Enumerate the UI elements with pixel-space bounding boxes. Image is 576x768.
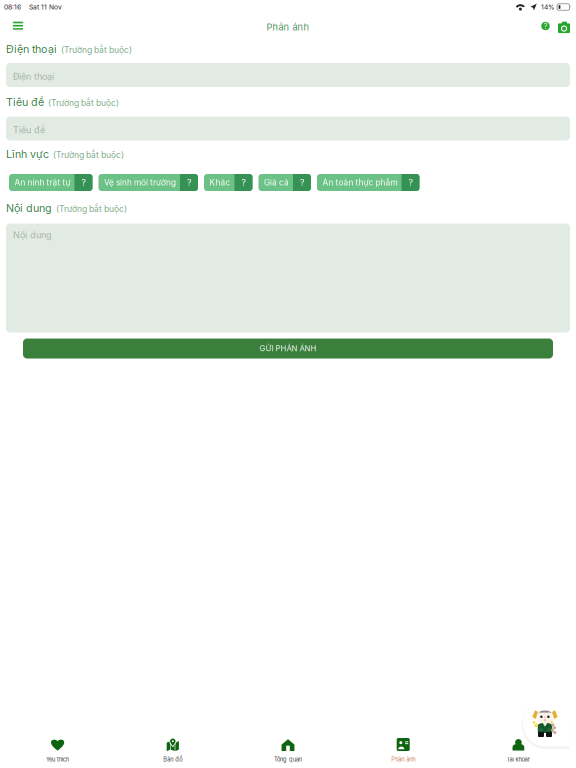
button[interactable]: Khác [204,174,252,191]
staticText: Khác [209,177,230,187]
button[interactable]: An toàn thực phẩm [317,174,419,191]
staticText: Điện thoại [6,42,57,55]
staticText: Tài khoản [506,756,530,763]
staticText: Vệ sinh môi trường [104,177,176,187]
staticText: Nội dung [13,229,52,240]
staticText: ? [241,177,245,188]
staticText: (Trường bắt buộc) [61,45,132,55]
button[interactable]: Tài khoản [461,729,576,768]
staticText: Phản ánh [391,756,415,763]
staticText: 08:16 [4,3,21,11]
staticText: Yêu thích [46,756,69,763]
staticText: Lĩnh vực [6,147,49,160]
button[interactable]: Phản ánh [346,729,461,768]
staticText: Bản đồ [163,756,182,763]
button[interactable]: Assistant [524,701,571,749]
staticText: An toàn thực phẩm [322,177,397,187]
staticText: Tiêu đề [13,124,45,135]
button[interactable]: Yêu thích [0,729,115,768]
staticText: (Trường bắt buộc) [48,98,119,108]
staticText: ? [300,177,304,188]
staticText: GỬI PHẢN ÁNH [259,344,316,353]
button[interactable]: Vệ sinh môi trường [98,174,198,191]
button[interactable]: Điện thoại [6,63,570,87]
staticText: Tổng quan [274,756,302,763]
button[interactable]: GỬI PHẢN ÁNH [23,338,553,358]
button[interactable]: Take photo [554,14,574,40]
button[interactable]: An ninh trật tự [9,174,92,191]
button[interactable]: Bản đồ [115,729,230,768]
staticText: An ninh trật tự [14,177,70,187]
staticText: Sat 11 Nov [29,3,62,11]
staticText: (Trường bắt buộc) [56,204,127,214]
staticText: ? [187,177,191,188]
button[interactable]: Menu [5,14,31,40]
button[interactable]: Tổng quan [230,729,346,768]
staticText: Giá cả [264,177,289,187]
button[interactable]: Tiêu đề [6,116,570,140]
button[interactable]: Help [537,14,554,40]
staticText: 14% [541,3,555,11]
button[interactable]: Giá cả [258,174,311,191]
staticText: ? [408,177,412,188]
staticText: (Trường bắt buộc) [53,150,124,160]
staticText: ? [81,177,85,188]
staticText: Tiêu đề [6,95,44,108]
staticText: ? [543,21,547,31]
staticText: Điện thoại [13,71,54,82]
staticText: Nội dung [6,201,52,214]
staticText: Phản ánh [266,21,309,33]
